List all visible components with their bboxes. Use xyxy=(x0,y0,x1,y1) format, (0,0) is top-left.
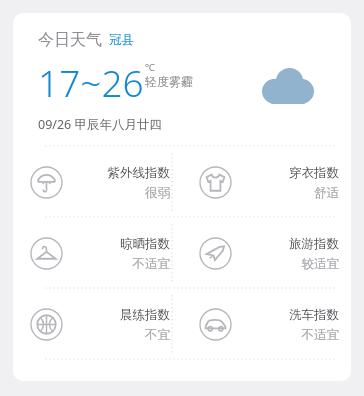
staticText: 较适宜 xyxy=(301,256,339,272)
staticText: 09/26 甲辰年八月廿四 xyxy=(38,116,163,133)
button[interactable]: 穿衣指数 xyxy=(182,147,351,218)
staticText: ℃ xyxy=(145,60,155,74)
staticText: 今日天气 xyxy=(38,30,102,50)
staticText: 不适宜 xyxy=(301,327,339,343)
staticText: 轻度雾霾 xyxy=(145,74,193,89)
staticText: 晾晒指数 xyxy=(120,236,170,252)
other: 紫外线指数 xyxy=(30,166,63,199)
staticText: 晨练指数 xyxy=(120,307,170,323)
other: 晾晒指数 xyxy=(30,237,63,270)
other: 洗车指数 xyxy=(199,308,232,341)
button[interactable]: 晾晒指数 xyxy=(13,218,182,289)
other: 穿衣指数 xyxy=(199,166,232,199)
button[interactable]: 晨练指数 xyxy=(13,289,182,360)
staticText: 舒适 xyxy=(314,185,339,201)
button[interactable]: 旅游指数 xyxy=(182,218,351,289)
staticText: 冠县 xyxy=(109,32,134,48)
staticText: 紫外线指数 xyxy=(107,165,170,181)
staticText: 不宜 xyxy=(145,327,170,343)
staticText: 旅游指数 xyxy=(289,236,339,252)
staticText: 洗车指数 xyxy=(289,307,339,323)
staticText: 穿衣指数 xyxy=(289,165,339,181)
staticText: 很弱 xyxy=(145,185,170,201)
button[interactable]: 紫外线指数 xyxy=(13,147,182,218)
staticText: 不适宜 xyxy=(132,256,170,272)
staticText: 17~26 xyxy=(38,57,144,107)
other: 旅游指数 xyxy=(199,237,232,270)
other: 晨练指数 xyxy=(30,308,63,341)
button[interactable]: 洗车指数 xyxy=(182,289,351,360)
